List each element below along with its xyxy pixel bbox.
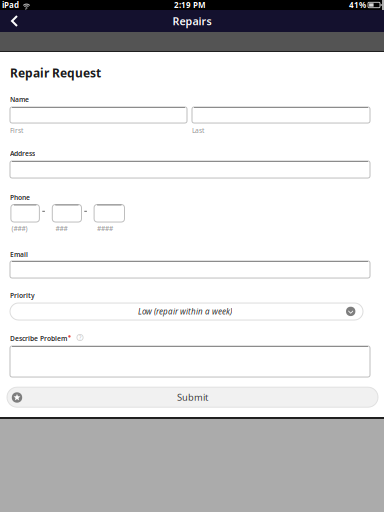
staticText: Name — [10, 95, 29, 104]
staticText: Priority — [10, 291, 35, 300]
staticText: Repair Request — [10, 65, 101, 81]
staticText: Phone — [10, 193, 30, 202]
staticText: 2:19 PM — [174, 0, 206, 10]
staticText: Submit — [177, 391, 208, 403]
button[interactable]: Low (repair within a week) — [10, 303, 363, 320]
staticText: Repairs — [172, 14, 211, 28]
staticText: #### — [97, 224, 113, 233]
staticText: Address — [10, 149, 35, 158]
staticText: First — [10, 126, 23, 135]
staticText: Describe Problem — [10, 334, 67, 343]
staticText: ### — [55, 224, 67, 233]
button[interactable]: Submit — [7, 387, 378, 407]
button[interactable]: Back — [4, 10, 26, 31]
staticText: (###) — [11, 224, 27, 233]
staticText: iPad — [2, 0, 19, 10]
staticText: 41% — [349, 0, 366, 10]
staticText: Email — [10, 250, 28, 259]
staticText: Low (repair within a week) — [138, 306, 232, 317]
staticText: ? — [79, 334, 81, 341]
staticText: Last — [192, 126, 204, 135]
